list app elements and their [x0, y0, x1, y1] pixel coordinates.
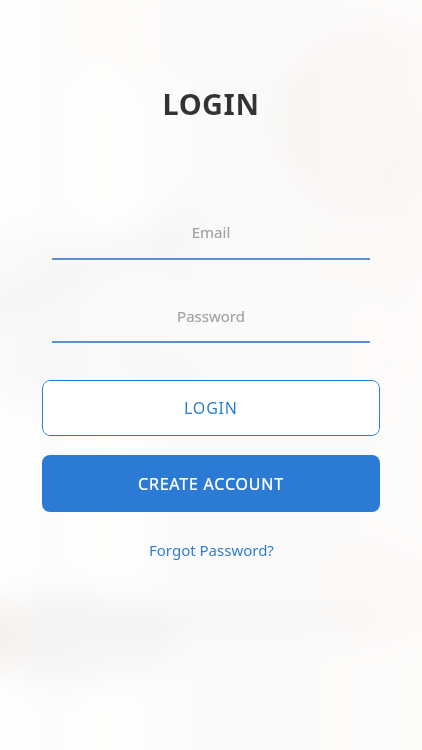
button[interactable]: Forgot Password? [0, 534, 422, 566]
button[interactable]: LOGIN [42, 380, 380, 436]
staticText: Email [52, 222, 370, 242]
staticText: Forgot Password? [149, 540, 274, 560]
staticText: LOGIN [0, 84, 422, 123]
staticText: LOGIN [184, 397, 238, 419]
button[interactable]: Password [52, 306, 370, 343]
staticText: CREATE ACCOUNT [138, 473, 284, 495]
button[interactable]: Email [52, 222, 370, 260]
staticText: Password [52, 306, 370, 326]
button[interactable]: CREATE ACCOUNT [42, 455, 380, 512]
